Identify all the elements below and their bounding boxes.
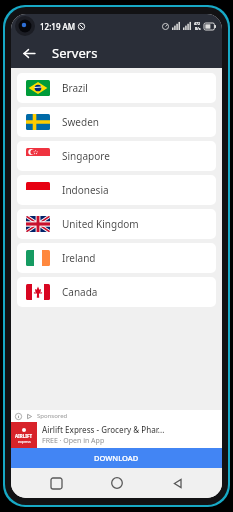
staticText: express	[18, 439, 31, 444]
staticText: Sweden	[62, 115, 99, 129]
staticText: Brazil	[62, 81, 88, 95]
staticText: Servers	[52, 44, 98, 62]
staticText: Singapore	[62, 149, 110, 163]
button[interactable]: Singapore	[17, 141, 216, 171]
button[interactable]: United Kingdom	[17, 209, 216, 239]
button[interactable]: DOWNLOAD	[11, 448, 222, 468]
staticText: FREE · Open in App	[42, 436, 105, 446]
button[interactable]: Back	[162, 468, 192, 498]
staticText: United Kingdom	[62, 217, 139, 231]
staticText: 12:19 AM	[40, 21, 76, 32]
staticText: DOWNLOAD	[94, 453, 139, 463]
staticText: Indonesia	[62, 183, 109, 197]
staticText: B/s	[195, 26, 201, 31]
button[interactable]: Canada	[17, 277, 216, 307]
button[interactable]: Indonesia	[17, 175, 216, 205]
staticText: Airlift Express - Grocery & Phar...	[42, 424, 165, 435]
staticText: Canada	[62, 285, 98, 299]
button[interactable]: AIRLIFT	[11, 422, 222, 448]
staticText: Ireland	[62, 251, 96, 265]
staticText: Sponsored	[37, 412, 68, 420]
button[interactable]: Brazil	[17, 73, 216, 103]
button[interactable]: Ireland	[17, 243, 216, 273]
button[interactable]: Sweden	[17, 107, 216, 137]
staticText: AIRLIFT	[15, 433, 33, 439]
staticText: 472	[194, 21, 201, 26]
button[interactable]: Home	[102, 468, 132, 498]
button[interactable]: Back	[18, 42, 40, 64]
button[interactable]: Recents	[41, 468, 71, 498]
